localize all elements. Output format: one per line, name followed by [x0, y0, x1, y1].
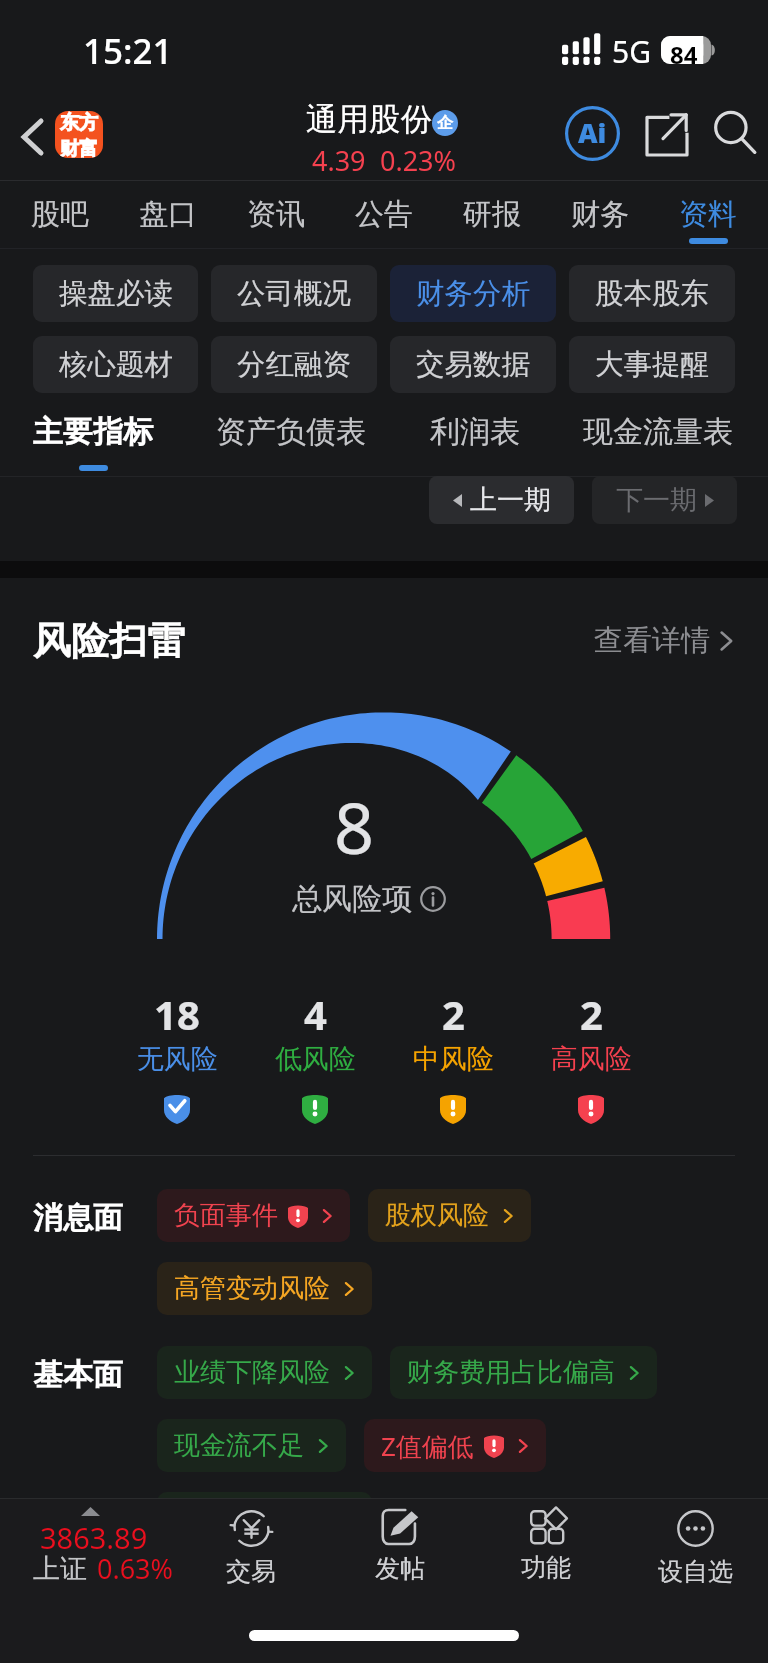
- button[interactable]: 4: [246, 987, 384, 1124]
- staticText: 0.23%: [380, 142, 457, 179]
- button[interactable]: 股权风险: [368, 1189, 531, 1242]
- button[interactable]: Z值偏低: [364, 1419, 546, 1472]
- staticText: 2: [580, 987, 603, 1041]
- button[interactable]: 2: [522, 987, 660, 1124]
- staticText: 资讯: [247, 196, 305, 233]
- button[interactable]: 业绩下降风险: [157, 1346, 372, 1399]
- staticText: 4.39: [312, 142, 366, 179]
- button[interactable]: 功能: [476, 1510, 616, 1620]
- button[interactable]: 公告: [330, 180, 438, 248]
- staticText: 发帖: [375, 1553, 425, 1584]
- button[interactable]: 查看详情: [594, 622, 736, 659]
- button[interactable]: 3863.89: [0, 1498, 180, 1608]
- staticText: 中风险: [413, 1042, 494, 1076]
- staticText: 高风险: [551, 1042, 632, 1076]
- staticText: 现金流量表: [583, 413, 733, 451]
- staticText: 消息面: [33, 1199, 123, 1237]
- staticText: 高管变动风险: [174, 1272, 330, 1305]
- button[interactable]: 交易: [181, 1510, 321, 1620]
- button[interactable]: 18: [108, 987, 246, 1124]
- staticText: 股权风险: [385, 1199, 489, 1232]
- staticText: 企: [437, 113, 453, 133]
- staticText: 查看详情: [594, 622, 710, 659]
- staticText: 风险扫雷: [33, 617, 185, 665]
- staticText: 商誉占比偏高: [174, 1502, 330, 1535]
- staticText: 盘口: [139, 196, 197, 233]
- button[interactable]: 财务费用占比偏高: [390, 1346, 657, 1399]
- button[interactable]: 2: [384, 987, 522, 1124]
- staticText: 15:21: [83, 27, 173, 75]
- button[interactable]: 高管变动风险: [157, 1262, 372, 1315]
- staticText: 3863.89: [40, 1518, 148, 1557]
- button[interactable]: 资料: [654, 180, 762, 248]
- button[interactable]: 盘口: [114, 180, 222, 248]
- staticText: 交易数据: [416, 347, 530, 383]
- staticText: Ai: [578, 114, 607, 151]
- staticText: 低风险: [275, 1042, 356, 1076]
- button[interactable]: 现金流不足: [157, 1419, 346, 1472]
- button[interactable]: 核心题材: [33, 336, 198, 393]
- staticText: Z值偏低: [381, 1428, 474, 1464]
- staticText: 2: [442, 987, 465, 1041]
- button[interactable]: 现金流量表: [566, 400, 750, 477]
- button[interactable]: 东方: [55, 111, 103, 158]
- staticText: 业绩下降风险: [174, 1356, 330, 1389]
- staticText: 公司概况: [237, 276, 351, 312]
- staticText: 主要指标: [33, 413, 153, 451]
- button[interactable]: 利润表: [383, 400, 567, 477]
- staticText: 4: [304, 987, 327, 1041]
- staticText: 总风险项: [292, 880, 412, 918]
- button[interactable]: 主要指标: [0, 400, 186, 477]
- staticText: 0.63%: [97, 1550, 174, 1587]
- button[interactable]: Share: [634, 101, 700, 167]
- staticText: 设自选: [658, 1556, 733, 1587]
- staticText: 公告: [355, 196, 413, 233]
- button[interactable]: 财务分析: [390, 265, 556, 322]
- staticText: 研报: [463, 196, 521, 233]
- staticText: 交易: [226, 1556, 276, 1587]
- staticText: 东方: [60, 111, 98, 135]
- staticText: 负面事件: [174, 1199, 278, 1232]
- staticText: 资产负债表: [216, 413, 366, 451]
- staticText: 现金流不足: [174, 1429, 304, 1462]
- staticText: 操盘必读: [59, 276, 173, 312]
- button[interactable]: 公司概况: [211, 265, 377, 322]
- button[interactable]: 操盘必读: [33, 265, 198, 322]
- staticText: 财富: [60, 137, 98, 158]
- staticText: 下一期: [616, 483, 697, 517]
- staticText: 上证: [33, 1552, 87, 1586]
- button[interactable]: 研报: [438, 180, 546, 248]
- staticText: 大事提醒: [595, 347, 709, 383]
- staticText: 财务分析: [416, 276, 530, 312]
- staticText: 无风险: [137, 1042, 218, 1076]
- staticText: 核心题材: [59, 347, 173, 383]
- staticText: 利润表: [430, 413, 520, 451]
- button[interactable]: AI assistant: [558, 99, 627, 168]
- button[interactable]: 下一期: [592, 476, 737, 524]
- button[interactable]: 发帖: [330, 1510, 470, 1620]
- button[interactable]: 负面事件: [157, 1189, 350, 1242]
- staticText: 18: [154, 987, 200, 1041]
- staticText: 功能: [521, 1552, 571, 1583]
- staticText: 基本面: [33, 1356, 123, 1394]
- button[interactable]: 资产负债表: [199, 400, 383, 477]
- staticText: 资料: [679, 196, 737, 233]
- staticText: 股吧: [31, 196, 89, 233]
- button[interactable]: 交易数据: [390, 336, 556, 393]
- button[interactable]: 商誉占比偏高: [157, 1492, 372, 1545]
- button[interactable]: 设自选: [625, 1510, 765, 1620]
- button[interactable]: 上一期: [429, 476, 574, 524]
- button[interactable]: 股本股东: [569, 265, 735, 322]
- staticText: 财务: [571, 196, 629, 233]
- staticText: 通用股份: [306, 100, 432, 140]
- button[interactable]: Back: [2, 100, 58, 170]
- button[interactable]: 资讯: [222, 180, 330, 248]
- button[interactable]: 分红融资: [211, 336, 377, 393]
- button[interactable]: 股吧: [6, 180, 114, 248]
- staticText: 上一期: [470, 483, 551, 517]
- button[interactable]: 财务: [546, 180, 654, 248]
- staticText: 分红融资: [237, 347, 351, 383]
- staticText: 5G: [612, 31, 651, 72]
- button[interactable]: 大事提醒: [569, 336, 735, 393]
- button[interactable]: Search: [702, 100, 768, 166]
